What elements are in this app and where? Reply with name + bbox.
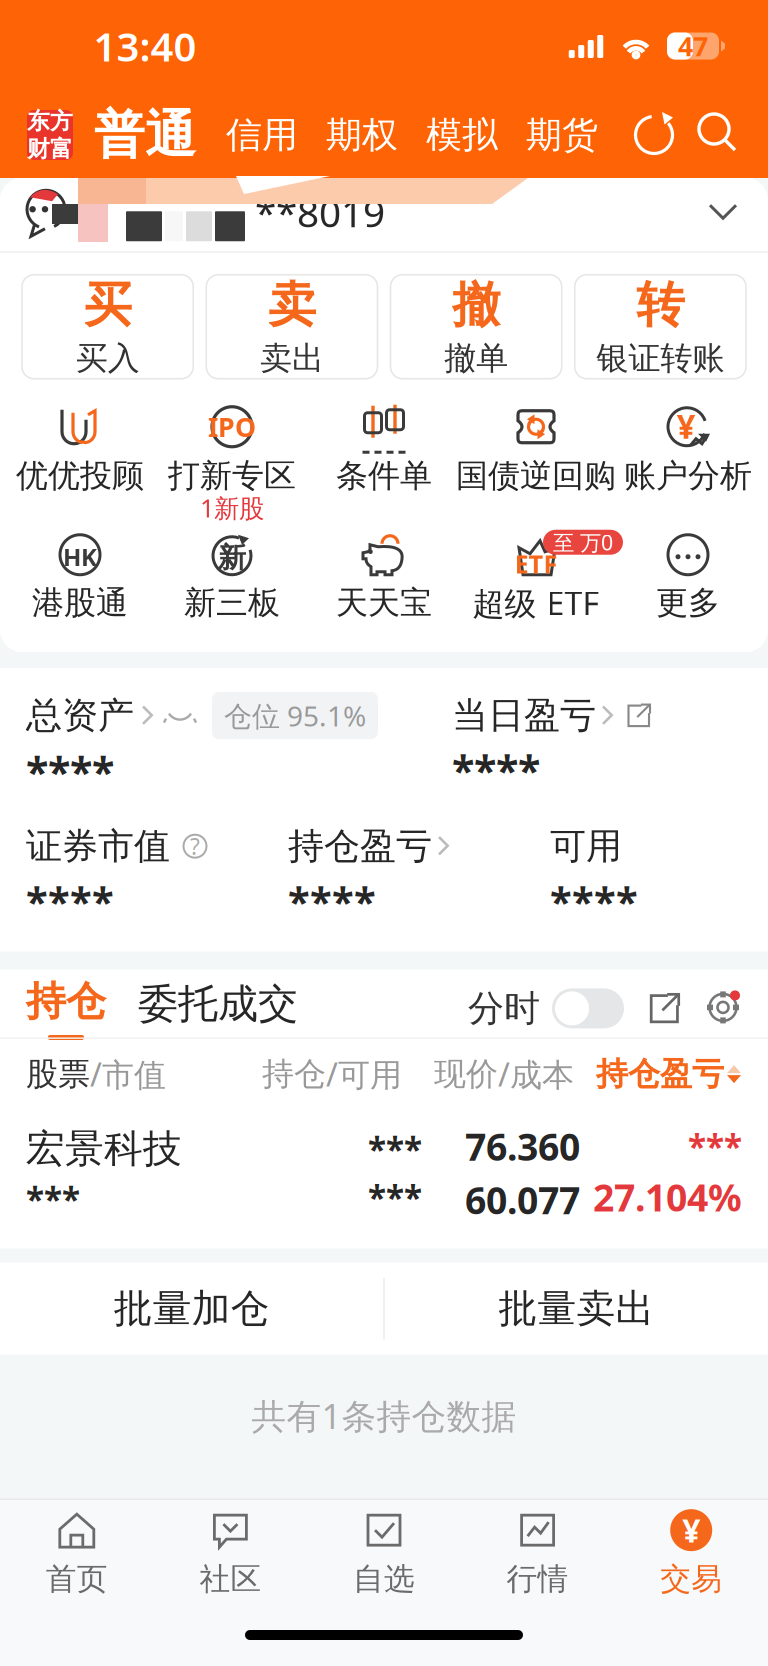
staticText: 批量卖出: [498, 1285, 654, 1332]
button[interactable]: 当日盈亏: [452, 693, 742, 797]
staticText: ¥: [676, 404, 695, 448]
staticText: 买: [84, 276, 132, 335]
button[interactable]: 证券市值: [26, 824, 288, 927]
button[interactable]: 持仓盈亏: [596, 1054, 742, 1094]
staticText: ****: [26, 743, 114, 798]
button[interactable]: 总资产: [26, 692, 452, 798]
staticText: 普通: [94, 104, 196, 166]
staticText: 分时: [468, 986, 540, 1030]
button[interactable]: 普通: [94, 103, 196, 167]
staticText: 打新专区: [168, 456, 296, 495]
button[interactable]: 卖: [206, 275, 377, 379]
button[interactable]: 优优投顾: [4, 403, 156, 530]
button[interactable]: 买: [22, 275, 193, 379]
staticText: 可用: [550, 824, 622, 868]
staticText: 至 万0: [553, 528, 613, 556]
button[interactable]: 首页: [0, 1507, 154, 1597]
button[interactable]: 模拟: [426, 105, 498, 165]
staticText: ****: [452, 742, 540, 797]
staticText: 47: [678, 28, 708, 64]
staticText: ***: [368, 1175, 422, 1219]
staticText: ****: [288, 874, 376, 927]
staticText: 首页: [46, 1560, 108, 1598]
staticText: /市值: [90, 1053, 166, 1095]
button[interactable]: **8019: [0, 173, 768, 251]
button[interactable]: 撤: [390, 275, 562, 379]
staticText: 现价: [434, 1054, 498, 1094]
staticText: 撤单: [444, 339, 508, 378]
staticText: 更多: [656, 583, 720, 622]
button[interactable]: 新: [156, 530, 308, 657]
button[interactable]: 持仓盈亏: [288, 824, 550, 927]
staticText: 持仓: [26, 977, 106, 1026]
button[interactable]: 更多: [612, 530, 764, 657]
staticText: ETF: [514, 547, 557, 580]
staticText: ***: [368, 1127, 422, 1171]
staticText: 社区: [199, 1560, 261, 1598]
button[interactable]: 持仓: [26, 979, 106, 1037]
button[interactable]: 宏景科技: [0, 1095, 768, 1249]
staticText: 优优投顾: [16, 456, 144, 495]
button[interactable]: ¥: [614, 1507, 768, 1597]
staticText: 股票: [26, 1054, 90, 1094]
button[interactable]: 搜索: [694, 109, 742, 161]
button[interactable]: 东方财富: [22, 105, 78, 165]
staticText: ¥: [682, 1509, 700, 1551]
staticText: 期权: [326, 113, 398, 157]
staticText: HK: [63, 541, 97, 573]
staticText: 财富: [27, 135, 73, 163]
button[interactable]: ETF: [460, 530, 612, 657]
staticText: 银证转账: [596, 339, 724, 378]
staticText: 买入: [76, 339, 140, 378]
staticText: 总资产: [26, 693, 134, 738]
staticText: ***: [688, 1124, 742, 1168]
button[interactable]: 批量加仓: [0, 1263, 383, 1355]
button[interactable]: 设置: [702, 988, 742, 1028]
staticText: 1新股: [200, 491, 264, 524]
button[interactable]: HK: [4, 530, 156, 657]
button[interactable]: 期权: [326, 105, 398, 165]
button[interactable]: 期货: [526, 105, 598, 165]
staticText: 新三板: [184, 583, 280, 622]
button[interactable]: 条件单: [308, 403, 460, 530]
staticText: 条件单: [336, 456, 432, 495]
staticText: 模拟: [426, 113, 498, 157]
button[interactable]: 分时开关: [540, 988, 624, 1028]
staticText: ?: [190, 831, 200, 861]
staticText: 13:40: [93, 19, 196, 72]
staticText: 证券市值: [26, 824, 170, 868]
button[interactable]: ¥: [612, 403, 764, 530]
button[interactable]: 转: [575, 275, 746, 379]
staticText: 持仓盈亏: [288, 824, 432, 868]
button[interactable]: 刷新: [630, 109, 680, 161]
staticText: 港股通: [32, 583, 128, 622]
staticText: ****: [26, 874, 114, 927]
staticText: 仓位 95.1%: [224, 697, 366, 734]
button[interactable]: 信用: [226, 105, 298, 165]
button[interactable]: 委托成交: [138, 979, 298, 1037]
staticText: ***: [26, 1177, 80, 1221]
button[interactable]: 自选: [307, 1507, 461, 1597]
staticText: /成本: [498, 1053, 574, 1095]
staticText: 国债逆回购: [456, 456, 616, 495]
button[interactable]: 行情: [461, 1507, 614, 1597]
staticText: 委托成交: [138, 979, 298, 1028]
button[interactable]: 天天宝: [308, 530, 460, 657]
button[interactable]: IPO: [156, 403, 308, 530]
staticText: 当日盈亏: [452, 693, 596, 738]
staticText: 账户分析: [624, 456, 752, 495]
staticText: 撤: [452, 276, 500, 335]
button[interactable]: 展开: [640, 984, 688, 1032]
button[interactable]: 国债逆回购: [460, 403, 612, 530]
staticText: /可用: [326, 1053, 402, 1095]
button[interactable]: 社区: [154, 1507, 307, 1597]
staticText: 76.360: [465, 1121, 580, 1171]
staticText: 持仓盈亏: [596, 1054, 724, 1094]
staticText: 信用: [226, 113, 298, 157]
staticText: ****: [550, 874, 638, 927]
staticText: 期货: [526, 113, 598, 157]
staticText: 新: [218, 541, 246, 575]
staticText: 60.077: [465, 1175, 580, 1225]
button[interactable]: 批量卖出: [385, 1263, 768, 1355]
staticText: 共有1条持仓数据: [251, 1393, 516, 1439]
